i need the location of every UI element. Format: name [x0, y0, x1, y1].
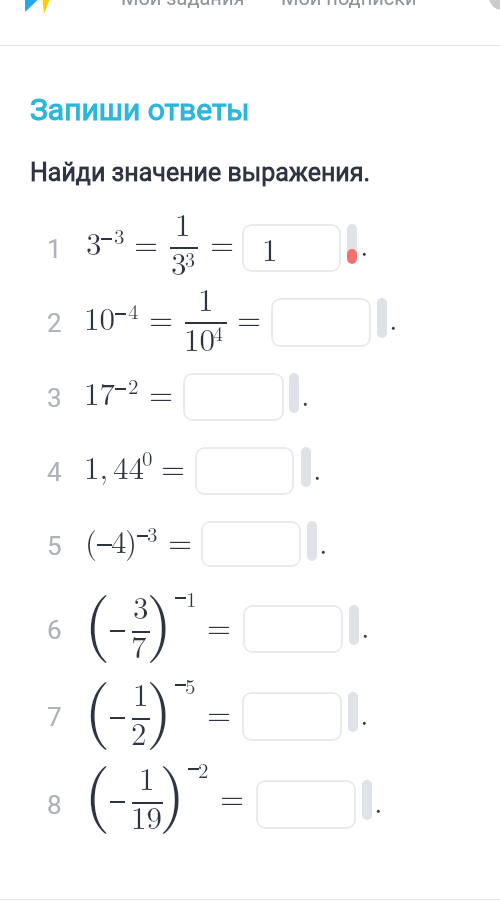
staticText: . — [360, 221, 369, 265]
staticText: 2 — [198, 754, 209, 784]
staticText: 10 — [184, 316, 215, 360]
button[interactable]: Hint — [301, 447, 311, 487]
staticText: 4 — [128, 295, 139, 325]
button[interactable]: Answer field — [242, 224, 341, 272]
button[interactable]: Hint — [348, 692, 358, 732]
staticText: = — [220, 774, 245, 818]
staticText: 3 — [147, 518, 158, 548]
staticText: ( — [85, 518, 98, 562]
staticText: 19 — [131, 794, 162, 838]
button[interactable]: Answer field — [256, 780, 356, 829]
staticText: 4 — [213, 318, 223, 346]
button[interactable]: Hint — [362, 780, 372, 820]
staticText: ( — [84, 569, 111, 665]
staticText: 17 — [84, 370, 115, 414]
staticText: 1 — [186, 583, 197, 613]
other: Logo — [22, 0, 70, 16]
staticText: 1 — [262, 226, 278, 270]
staticText: 4 — [47, 457, 62, 487]
staticText: 1, — [84, 444, 109, 488]
button[interactable]: Answer field — [242, 692, 342, 741]
staticText: 0 — [142, 442, 153, 472]
staticText: 1 — [198, 276, 214, 320]
staticText: 7 — [131, 623, 147, 667]
staticText: . — [319, 519, 328, 563]
staticText: . — [360, 690, 369, 734]
staticText: 1 — [47, 234, 62, 264]
staticText: ) — [146, 656, 173, 752]
staticText: 1 — [133, 671, 149, 715]
staticText: Мои задания — [121, 0, 245, 9]
button[interactable]: Мои подписки — [281, 0, 417, 9]
button[interactable]: Hint — [377, 298, 387, 338]
staticText: = — [149, 370, 174, 414]
staticText: = — [207, 690, 232, 734]
staticText: . — [389, 295, 398, 339]
staticText: 2 — [128, 370, 139, 400]
staticText: ) — [146, 569, 173, 665]
staticText: 7 — [47, 702, 62, 732]
staticText: ( — [84, 740, 111, 836]
staticText: = — [161, 444, 186, 488]
staticText: ) — [125, 518, 138, 562]
staticText: = — [210, 220, 235, 264]
staticText: 44 — [113, 444, 144, 488]
staticText: = — [207, 603, 232, 647]
staticText: 2 — [47, 308, 62, 338]
button[interactable]: Profile — [489, 0, 500, 10]
button[interactable]: Answer field — [183, 373, 284, 421]
staticText: 1 — [175, 201, 191, 245]
button[interactable]: Hint — [349, 605, 359, 645]
staticText: 3 — [133, 584, 149, 628]
staticText: . — [374, 778, 383, 822]
button[interactable]: Answer field — [243, 605, 343, 653]
button[interactable]: Hint — [347, 224, 357, 264]
staticText: 8 — [47, 790, 62, 820]
staticText: 4 — [111, 518, 127, 562]
button[interactable]: Answer field — [201, 521, 301, 567]
staticText: 3 — [171, 240, 187, 284]
staticText: 6 — [47, 615, 62, 645]
staticText: 1 — [139, 755, 155, 799]
button[interactable]: Answer field — [271, 298, 371, 347]
staticText: . — [361, 603, 370, 647]
staticText: = — [237, 295, 262, 339]
staticText: 2 — [131, 710, 147, 754]
staticText: ( — [84, 656, 111, 752]
staticText: Найди значение выражения. — [30, 158, 371, 187]
staticText: 5 — [47, 531, 62, 561]
button[interactable]: Запиши ответы — [30, 92, 250, 127]
staticText: = — [149, 295, 174, 339]
staticText: 3 — [86, 220, 102, 264]
staticText: 5 — [185, 670, 196, 700]
staticText: . — [313, 445, 322, 489]
button[interactable]: Hint — [307, 521, 317, 561]
button[interactable]: Hint — [289, 373, 299, 413]
staticText: Мои подписки — [281, 0, 417, 9]
staticText: 3 — [114, 220, 125, 250]
button[interactable]: Мои задания — [121, 0, 245, 9]
staticText: . — [301, 371, 310, 415]
staticText: 3 — [47, 383, 62, 413]
staticText: = — [168, 518, 193, 562]
staticText: = — [134, 220, 159, 264]
button[interactable]: Answer field — [195, 447, 294, 495]
staticText: 10 — [84, 295, 115, 339]
staticText: 3 — [185, 244, 195, 272]
staticText: ) — [159, 740, 186, 836]
